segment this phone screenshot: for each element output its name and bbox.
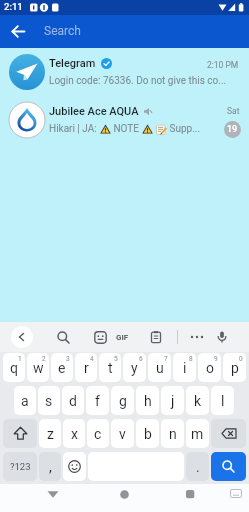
button[interactable]: y [123, 353, 146, 382]
button[interactable]: Telegram [0, 48, 249, 96]
staticText: 2:11 [4, 1, 23, 12]
button[interactable]: r [75, 353, 97, 382]
button[interactable] [211, 452, 246, 481]
staticText: d [69, 393, 77, 409]
staticText: v [119, 426, 126, 442]
staticText: n [169, 426, 177, 442]
staticText: 9 [214, 355, 218, 363]
staticText: , [49, 459, 52, 475]
button[interactable]: f [86, 386, 109, 415]
staticText: a [21, 393, 29, 409]
staticText: j [171, 393, 175, 409]
button[interactable] [89, 326, 111, 348]
button[interactable]: b [136, 419, 159, 448]
staticText: 2:10 PM [207, 60, 239, 70]
staticText: 4 [90, 355, 94, 363]
button[interactable]: q [3, 353, 25, 382]
staticText: k [194, 393, 202, 409]
button[interactable]: o [198, 353, 221, 382]
staticText: y [131, 360, 138, 376]
button[interactable]: Jubilee Ace AQUA [0, 96, 249, 144]
staticText: Supp... [167, 123, 201, 135]
staticText: Login code: 76336. Do not give this co..… [49, 75, 227, 87]
button[interactable]: p [223, 353, 246, 382]
staticText: GIF [116, 333, 129, 342]
staticText: b [144, 426, 152, 442]
button[interactable]: v [111, 419, 134, 448]
button[interactable]: u [148, 353, 171, 382]
staticText: ?123 [10, 461, 31, 472]
staticText: r [84, 360, 89, 376]
button[interactable] [3, 419, 37, 448]
staticText: w [33, 360, 44, 376]
button[interactable] [52, 326, 74, 348]
button[interactable]: j [161, 386, 184, 415]
staticText: c [94, 426, 102, 442]
button[interactable]: d [62, 386, 84, 415]
staticText: s [45, 393, 53, 409]
button[interactable]: e [51, 353, 73, 382]
button[interactable] [11, 326, 33, 348]
staticText: 0 [239, 355, 243, 363]
button[interactable]: a [14, 386, 36, 415]
staticText: Search [44, 24, 81, 38]
staticText: e [58, 360, 66, 376]
staticText: p [231, 360, 239, 376]
staticText: Jubilee Ace AQUA [49, 105, 139, 118]
staticText: t [108, 360, 113, 376]
staticText: . [196, 459, 200, 475]
button[interactable] [63, 452, 86, 481]
button[interactable]: m [186, 419, 209, 448]
staticText: f [95, 393, 100, 409]
staticText: z [47, 426, 54, 442]
staticText: x [71, 426, 78, 442]
button[interactable] [145, 326, 167, 348]
staticText: 19 [227, 124, 238, 135]
button[interactable]: h [136, 386, 159, 415]
button[interactable] [186, 326, 208, 348]
staticText: o [206, 360, 214, 376]
staticText: 5 [114, 355, 118, 363]
staticText: 1 [18, 355, 22, 363]
button[interactable]: w [27, 353, 49, 382]
staticText: m [191, 426, 204, 442]
staticText: Telegram [49, 57, 96, 70]
staticText: 2 [42, 355, 46, 363]
staticText: Sat [227, 106, 240, 116]
button[interactable] [179, 483, 201, 505]
button[interactable] [42, 483, 64, 505]
button[interactable]: k [186, 386, 209, 415]
staticText: NOTE [111, 123, 142, 135]
staticText: i [183, 360, 187, 376]
button[interactable]: GIF [111, 326, 133, 348]
staticText: l [221, 393, 225, 409]
button[interactable]: i [173, 353, 196, 382]
staticText: g [119, 393, 127, 409]
staticText: u [156, 360, 164, 376]
button[interactable]: l [211, 386, 234, 415]
staticText: h [144, 393, 152, 409]
staticText: 3 [66, 355, 70, 363]
button[interactable]: n [161, 419, 184, 448]
button[interactable]: g [111, 386, 134, 415]
staticText: 7 [164, 355, 168, 363]
button[interactable]: z [39, 419, 61, 448]
staticText: 8 [189, 355, 193, 363]
button[interactable]: , [39, 452, 61, 481]
button[interactable]: ?123 [3, 452, 37, 481]
staticText: q [10, 360, 18, 376]
button[interactable]: t [99, 353, 121, 382]
staticText: Hikari | JA: [49, 123, 100, 135]
button[interactable] [211, 419, 246, 448]
button[interactable] [226, 483, 246, 503]
staticText: 6 [139, 355, 143, 363]
button[interactable]: s [38, 386, 60, 415]
button[interactable] [6, 19, 31, 44]
button[interactable]: . [186, 452, 209, 481]
button[interactable] [211, 326, 233, 348]
button[interactable]: c [87, 419, 109, 448]
button[interactable] [113, 483, 135, 505]
button[interactable]: x [63, 419, 85, 448]
